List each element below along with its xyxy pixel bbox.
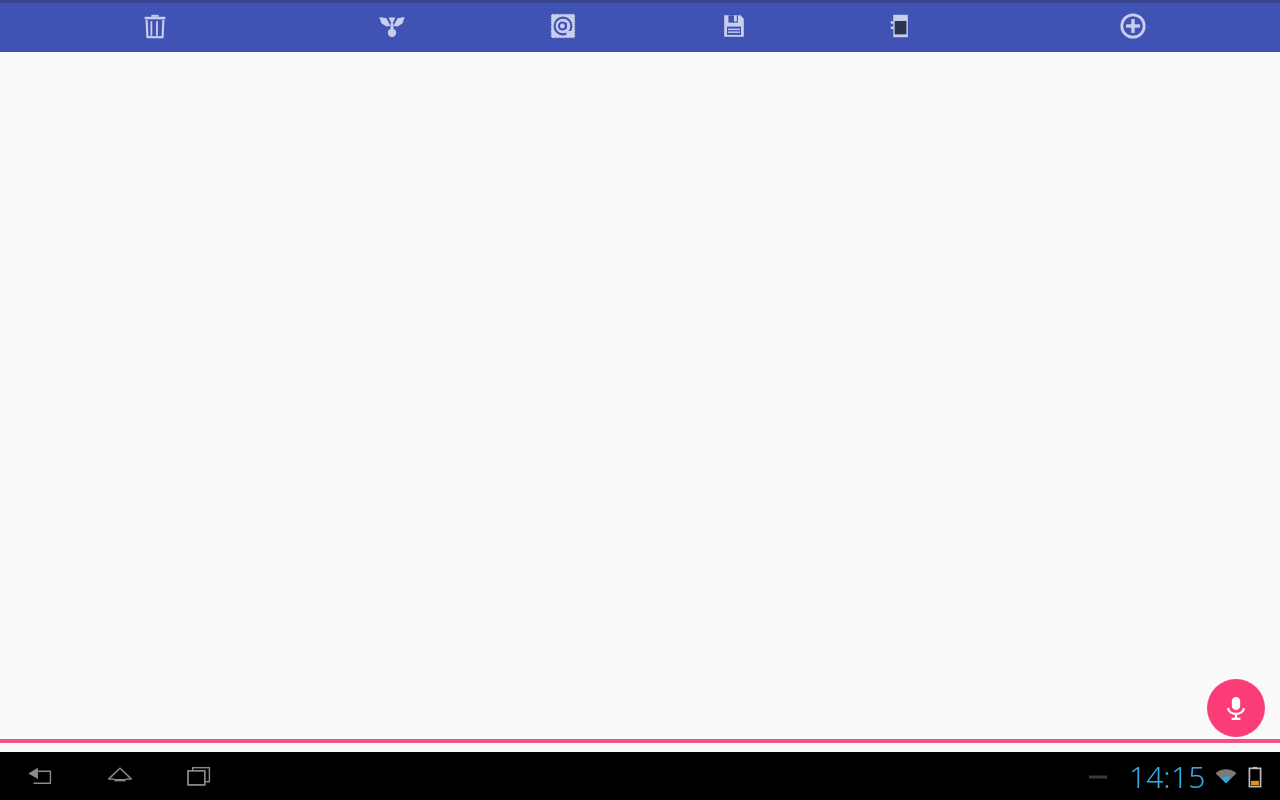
staticText: 15 [1171,756,1206,797]
button[interactable]: Voice input [1207,679,1265,737]
staticText: 14: [1129,756,1171,797]
button[interactable]: Email [537,0,589,52]
button[interactable]: Delete [129,0,181,52]
button[interactable]: Save [708,0,760,52]
button[interactable]: Home [98,754,142,798]
button[interactable]: Recent apps [177,754,221,798]
button[interactable]: Back [18,754,62,798]
button[interactable]: Page [874,0,926,52]
button[interactable]: Add [1107,0,1159,52]
button[interactable]: Split [366,0,418,52]
